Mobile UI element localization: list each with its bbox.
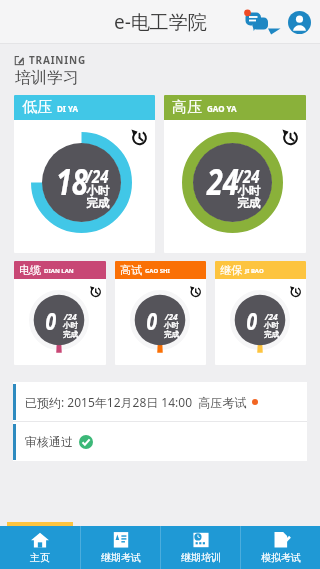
staticText: 高压	[172, 98, 202, 117]
button[interactable]: 继期考试	[81, 526, 160, 569]
button[interactable]: 高压	[164, 95, 306, 253]
staticText: /24	[265, 310, 278, 323]
staticText: /24	[64, 310, 77, 323]
button[interactable]: 高试	[115, 261, 206, 365]
button[interactable]: 继保	[215, 261, 306, 365]
button[interactable]: Profile	[278, 0, 320, 44]
button[interactable]: Messages	[234, 0, 278, 44]
button[interactable]: 已预约: 2015年12月28日 14:00 高压考试	[13, 382, 307, 421]
staticText: 电缆	[19, 263, 41, 277]
staticText: 小时	[63, 321, 78, 330]
staticText: 完成	[86, 196, 109, 210]
staticText: TRAINING	[29, 53, 86, 67]
staticText: /24	[165, 310, 178, 323]
staticText: 完成	[63, 330, 78, 339]
button[interactable]: History	[289, 285, 301, 297]
staticText: 小时	[264, 321, 279, 330]
staticText: DI YA	[57, 103, 79, 114]
staticText: 0	[45, 304, 57, 337]
staticText: 已预约: 2015年12月28日 14:00 高压考试	[25, 394, 247, 410]
button[interactable]: 模拟考试	[241, 526, 320, 569]
staticText: 18	[56, 157, 88, 206]
staticText: 完成	[164, 330, 179, 339]
staticText: 完成	[264, 330, 279, 339]
button[interactable]: History	[189, 285, 201, 297]
staticText: /24	[237, 165, 259, 188]
staticText: 培训学习	[15, 68, 79, 88]
staticText: 小时	[237, 184, 260, 198]
staticText: 继保	[220, 263, 242, 277]
staticText: 主页	[30, 551, 50, 564]
staticText: 审核通过	[25, 434, 73, 449]
staticText: DIAN LAN	[44, 267, 74, 275]
button[interactable]: 继期培训	[161, 526, 240, 569]
staticText: 0	[246, 304, 258, 337]
staticText: 小时	[164, 321, 179, 330]
staticText: 小时	[86, 184, 109, 198]
staticText: 高试	[120, 263, 142, 277]
staticText: GAO SHI	[145, 267, 170, 275]
button[interactable]: 审核通过	[13, 422, 307, 461]
staticText: GAO YA	[207, 103, 237, 114]
button[interactable]: 电缆	[14, 261, 106, 365]
button[interactable]: History	[281, 128, 298, 145]
staticText: 继期培训	[181, 551, 221, 564]
staticText: e-电工学院	[114, 9, 207, 35]
button[interactable]: 低压	[14, 95, 155, 253]
staticText: JI BAO	[245, 267, 264, 275]
staticText: /24	[86, 165, 108, 188]
button[interactable]: 主页	[0, 526, 80, 569]
staticText: 继期考试	[101, 551, 141, 564]
button[interactable]: History	[89, 285, 101, 297]
staticText: 完成	[237, 196, 260, 210]
staticText: 低压	[22, 98, 52, 117]
staticText: 模拟考试	[261, 551, 301, 564]
button[interactable]: History	[130, 128, 147, 145]
staticText: 0	[146, 304, 158, 337]
staticText: 24	[207, 157, 239, 206]
